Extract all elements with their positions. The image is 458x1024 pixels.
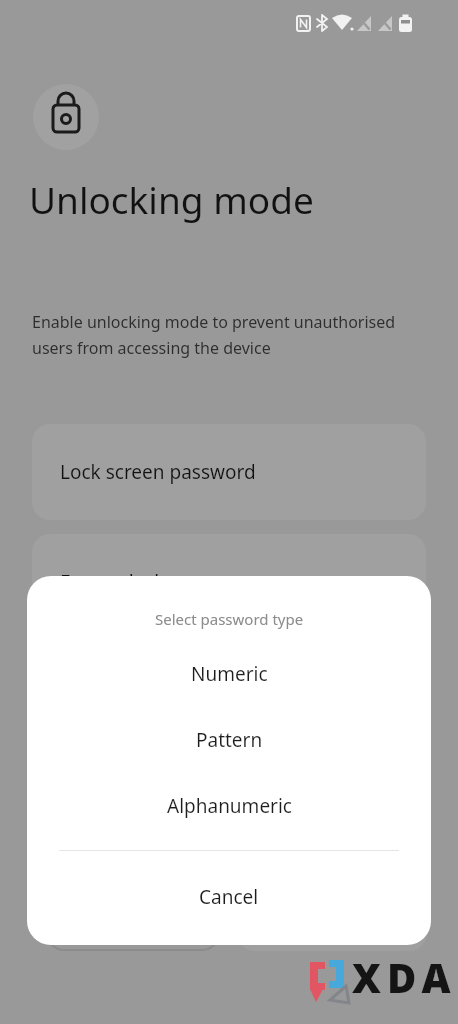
button[interactable]: Numeric bbox=[27, 641, 431, 707]
staticText: Numeric bbox=[191, 661, 268, 687]
staticText: Alphanumeric bbox=[167, 793, 292, 819]
staticText: Pattern bbox=[196, 727, 263, 753]
button[interactable] bbox=[46, 882, 220, 951]
staticText: XDA bbox=[352, 950, 457, 1004]
button[interactable]: Pattern bbox=[27, 707, 431, 773]
button[interactable]: Lock screen password bbox=[32, 424, 426, 520]
staticText: Cancel bbox=[199, 884, 259, 910]
button[interactable]: Face unlock bbox=[32, 534, 426, 630]
staticText: Select password type bbox=[155, 609, 304, 629]
button[interactable]: Alphanumeric bbox=[27, 773, 431, 839]
button[interactable] bbox=[237, 882, 427, 951]
staticText: Unlocking mode bbox=[29, 174, 314, 224]
staticText: Enable unlocking mode to prevent unautho… bbox=[32, 311, 396, 359]
staticText: Face unlock bbox=[60, 569, 165, 595]
button[interactable]: Cancel bbox=[27, 851, 431, 943]
staticText: Lock screen password bbox=[60, 459, 256, 485]
